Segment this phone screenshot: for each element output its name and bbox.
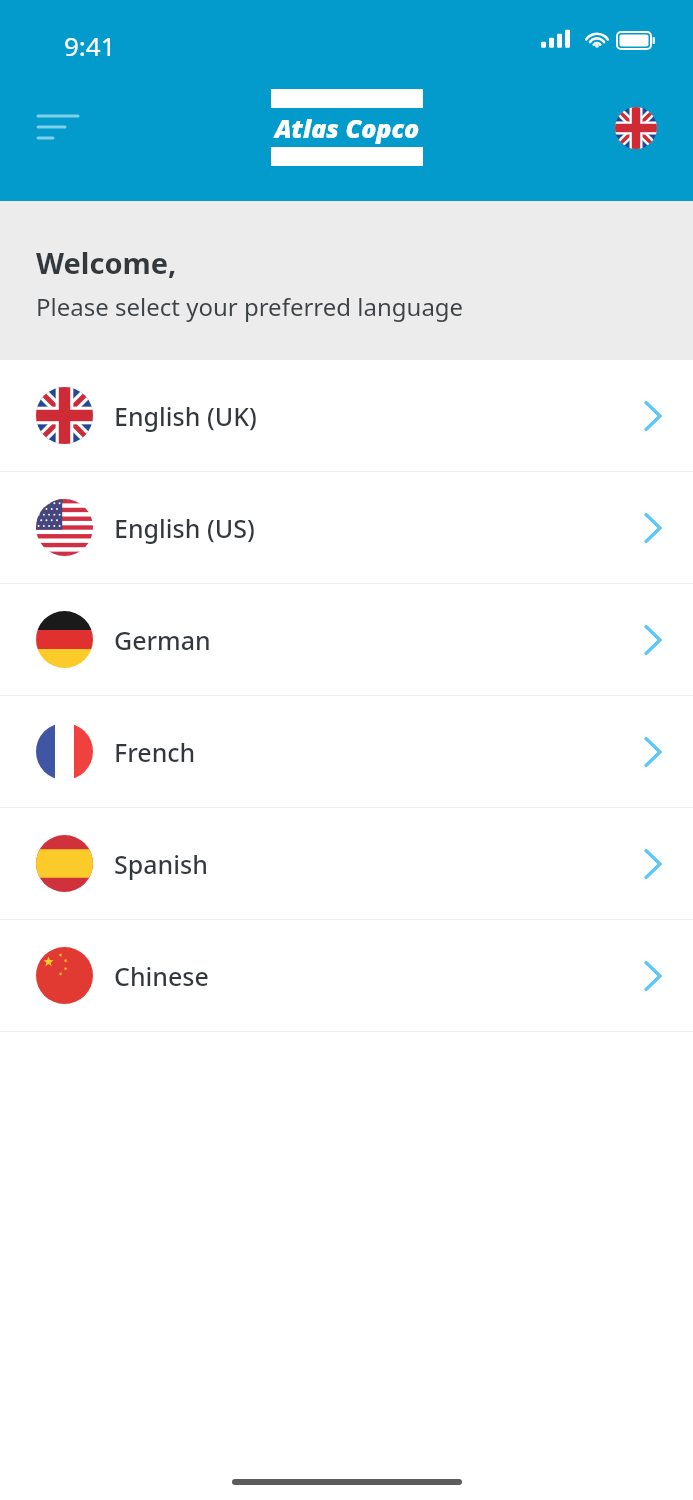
staticText: French (114, 735, 196, 769)
staticText: English (UK) (114, 399, 257, 433)
button[interactable]: Spanish (0, 808, 693, 919)
staticText: English (US) (114, 511, 255, 545)
staticText: German (114, 623, 211, 657)
staticText: Spanish (114, 847, 208, 881)
button[interactable]: German (0, 584, 693, 695)
staticText: Chinese (114, 959, 209, 993)
staticText: Please select your preferred language (36, 290, 464, 323)
button[interactable]: Change language (615, 107, 657, 149)
button[interactable]: English (UK) (0, 360, 693, 471)
button[interactable]: English (US) (0, 472, 693, 583)
button[interactable]: Chinese (0, 920, 693, 1031)
staticText: 9:41 (64, 28, 116, 63)
button[interactable]: French (0, 696, 693, 807)
staticText: Atlas Copco (271, 111, 423, 145)
button[interactable]: Atlas Copco (271, 89, 423, 166)
staticText: Welcome, (36, 243, 177, 282)
button[interactable]: Menu (22, 96, 86, 160)
